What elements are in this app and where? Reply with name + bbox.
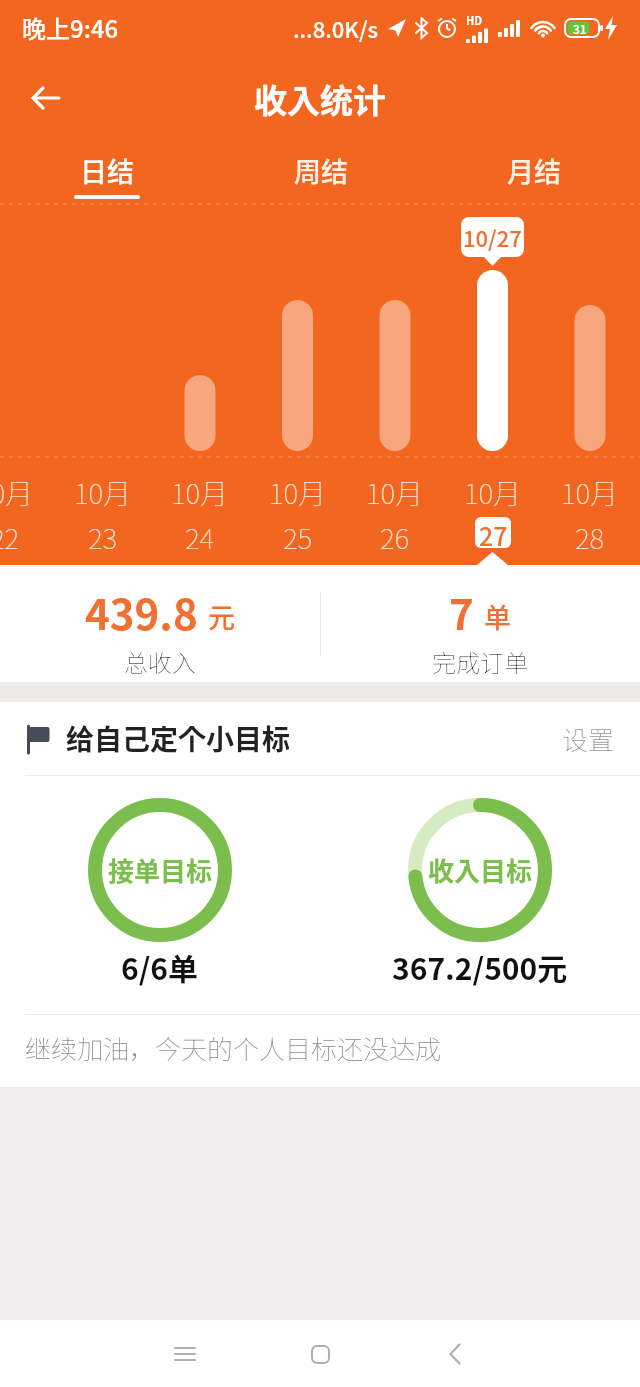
staticText: 总收入	[124, 644, 196, 679]
staticText: 收入统计	[254, 75, 386, 123]
button[interactable]: 月结	[427, 143, 640, 200]
staticText: 10月	[464, 472, 522, 513]
staticText: 给自己定个小目标	[66, 718, 291, 759]
staticText: 10月	[171, 472, 229, 513]
staticText: 22	[0, 517, 20, 558]
staticText: 10月	[269, 472, 327, 513]
staticText: 23	[88, 517, 118, 558]
staticText: 31	[573, 20, 587, 37]
staticText: 10月	[561, 472, 619, 513]
staticText: 接单目标	[108, 851, 213, 889]
button[interactable]	[425, 1324, 485, 1384]
staticText: 继续加油，今天的个人目标还没达成	[25, 1029, 442, 1067]
staticText: 27	[479, 517, 508, 548]
button[interactable]	[30, 82, 64, 116]
staticText: 月结	[507, 151, 561, 190]
staticText: 26	[380, 517, 410, 558]
staticText: 收入目标	[428, 851, 533, 889]
staticText: 25	[283, 517, 313, 558]
staticText: 10月	[366, 472, 424, 513]
staticText: 6/6单	[121, 945, 199, 988]
staticText: 7	[449, 581, 474, 642]
button[interactable]: 设置	[562, 720, 615, 758]
staticText: 367.2/500元	[392, 945, 568, 988]
staticText: 10月	[0, 472, 34, 513]
staticText: 28	[575, 517, 605, 558]
button[interactable]	[290, 1324, 350, 1384]
staticText: 439.8	[85, 581, 198, 642]
staticText: 10月	[74, 472, 132, 513]
staticText: 10/27	[463, 221, 522, 253]
staticText: 完成订单	[432, 644, 528, 679]
staticText: 日结	[80, 151, 134, 190]
button[interactable]: 周结	[214, 143, 427, 200]
button[interactable]	[155, 1324, 215, 1384]
staticText: 24	[185, 517, 215, 558]
staticText: 单	[484, 597, 511, 636]
staticText: 元	[208, 597, 235, 636]
staticText: HD	[466, 12, 483, 28]
staticText: ...8.0K/s	[293, 12, 379, 44]
button[interactable]: 日结	[0, 143, 214, 200]
staticText: 周结	[294, 151, 348, 190]
staticText: 设置	[562, 720, 615, 758]
staticText: 晚上9:46	[22, 10, 119, 45]
